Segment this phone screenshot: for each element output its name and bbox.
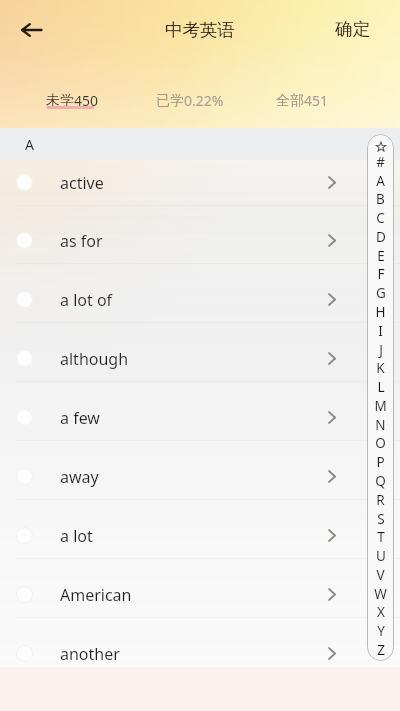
staticText: although bbox=[60, 348, 129, 370]
staticText: E bbox=[377, 247, 385, 265]
staticText: active bbox=[60, 172, 104, 194]
button[interactable]: Back bbox=[8, 6, 55, 53]
staticText: D bbox=[376, 228, 386, 246]
staticText: 0.22% bbox=[184, 91, 224, 110]
staticText: N bbox=[375, 416, 386, 434]
staticText: Z bbox=[377, 641, 385, 659]
staticText: as for bbox=[60, 230, 103, 252]
button[interactable]: as for bbox=[0, 211, 400, 270]
staticText: a lot of bbox=[60, 289, 113, 311]
staticText: F bbox=[377, 265, 385, 283]
staticText: C bbox=[376, 209, 385, 227]
button[interactable]: 已学 bbox=[154, 86, 226, 115]
staticText: J bbox=[379, 341, 383, 359]
button[interactable]: American bbox=[0, 565, 400, 624]
staticText: O bbox=[375, 434, 386, 452]
staticText: H bbox=[375, 303, 386, 321]
staticText: a few bbox=[60, 407, 100, 429]
staticText: A bbox=[376, 172, 385, 190]
button[interactable]: Alphabet index bbox=[367, 134, 394, 661]
staticText: 全部 bbox=[276, 92, 304, 110]
staticText: Y bbox=[377, 622, 385, 640]
staticText: G bbox=[376, 284, 386, 302]
staticText: 451 bbox=[304, 91, 329, 110]
staticText: A bbox=[25, 135, 34, 154]
staticText: another bbox=[60, 643, 120, 665]
staticText: X bbox=[377, 603, 385, 621]
staticText: 450 bbox=[74, 91, 99, 110]
staticText: P bbox=[376, 453, 385, 471]
staticText: L bbox=[377, 378, 385, 396]
staticText: Q bbox=[375, 472, 386, 490]
button[interactable]: a few bbox=[0, 388, 400, 447]
staticText: 中考英语 bbox=[165, 19, 235, 41]
button[interactable]: active bbox=[0, 153, 400, 212]
staticText: B bbox=[376, 190, 385, 208]
staticText: K bbox=[376, 359, 385, 377]
staticText: R bbox=[376, 491, 385, 509]
staticText: V bbox=[376, 566, 385, 584]
button[interactable]: another bbox=[0, 624, 400, 683]
staticText: U bbox=[376, 547, 386, 565]
staticText: a lot bbox=[60, 525, 93, 547]
staticText: 确定 bbox=[335, 18, 370, 40]
staticText: M bbox=[374, 397, 387, 415]
button[interactable]: a lot bbox=[0, 506, 400, 565]
staticText: away bbox=[60, 466, 99, 488]
staticText: S bbox=[377, 510, 385, 528]
staticText: American bbox=[60, 584, 132, 606]
staticText: W bbox=[374, 585, 387, 603]
button[interactable]: away bbox=[0, 447, 400, 506]
button[interactable]: 确定 bbox=[321, 10, 400, 48]
staticText: I bbox=[378, 322, 383, 340]
staticText: 已学 bbox=[156, 92, 184, 110]
button[interactable]: 全部 bbox=[274, 86, 331, 115]
button[interactable]: although bbox=[0, 329, 400, 388]
staticText: T bbox=[377, 528, 385, 546]
staticText: # bbox=[376, 153, 385, 171]
button[interactable]: a lot of bbox=[0, 270, 400, 329]
staticText: 未学 bbox=[46, 92, 74, 110]
button[interactable]: 未学 bbox=[44, 86, 101, 115]
